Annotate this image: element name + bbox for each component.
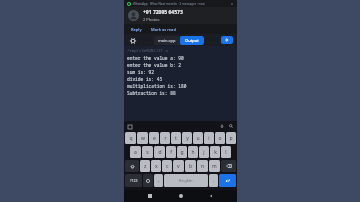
staticText: ,	[158, 177, 160, 184]
staticText: /tmp/cXeRGNCJ1T.o	[127, 48, 168, 53]
button[interactable]: Emoji	[143, 174, 153, 187]
staticText: h	[191, 149, 195, 156]
button[interactable]: g	[177, 146, 187, 158]
staticText: 2 Photos	[143, 17, 160, 22]
staticText: a	[134, 149, 137, 156]
button[interactable]: d	[154, 146, 165, 158]
staticText: q	[129, 135, 133, 142]
other: Expand	[230, 2, 234, 6]
button[interactable]: Clipboard	[127, 124, 132, 129]
staticText: WhatsApp · What Next months · 2 messages…	[133, 2, 205, 6]
button[interactable]: p	[226, 132, 236, 144]
button[interactable]: Output	[180, 36, 204, 45]
button[interactable]: k	[210, 146, 220, 158]
staticText: v	[177, 163, 180, 170]
button[interactable]: h	[188, 146, 198, 158]
staticText: .	[213, 177, 215, 184]
button[interactable]: v	[173, 160, 184, 172]
staticText: s	[146, 149, 149, 156]
staticText: e	[153, 135, 156, 142]
button[interactable]: r	[160, 132, 170, 144]
staticText: u	[196, 135, 200, 142]
staticText: i	[208, 135, 210, 142]
staticText: enter the value a: 90	[127, 55, 184, 61]
button[interactable]: ,	[154, 174, 163, 187]
staticText: +91 72095 64573	[143, 9, 183, 16]
button[interactable]: j	[199, 146, 209, 158]
staticText: n	[201, 163, 205, 170]
staticText: t	[175, 135, 177, 142]
button[interactable]: c	[162, 160, 172, 172]
button[interactable]: Shift	[125, 160, 139, 172]
staticText: p	[229, 135, 233, 142]
button[interactable]: Search	[228, 123, 234, 129]
button[interactable]: q	[125, 132, 136, 144]
staticText: g	[180, 149, 184, 156]
staticText: multiplication is: 180	[127, 83, 187, 89]
button[interactable]: Reply	[129, 26, 144, 33]
button[interactable]: n	[197, 160, 208, 172]
button[interactable]: o	[215, 132, 225, 144]
staticText: d	[158, 149, 162, 156]
staticText: o	[218, 135, 222, 142]
staticText: z	[144, 163, 147, 170]
button[interactable]: s	[142, 146, 153, 158]
button[interactable]: m	[209, 160, 220, 172]
button[interactable]: Enter	[219, 174, 236, 187]
button[interactable]: Home	[176, 191, 186, 201]
button[interactable]: z	[140, 160, 150, 172]
staticText: c	[166, 163, 169, 170]
staticText: w	[141, 135, 145, 142]
staticText: main.cpp	[158, 38, 176, 43]
button[interactable]: i	[204, 132, 214, 144]
staticText: k	[214, 149, 217, 156]
staticText: m	[212, 163, 217, 170]
button[interactable]: u	[193, 132, 203, 144]
button[interactable]: Run	[221, 36, 233, 44]
button[interactable]: e	[149, 132, 159, 144]
staticText: b	[189, 163, 193, 170]
staticText: f	[170, 149, 172, 156]
button[interactable]: Mark as read	[149, 26, 178, 33]
button[interactable]: main.cpp	[154, 36, 180, 45]
button[interactable]: t	[171, 132, 181, 144]
staticText: y	[186, 135, 189, 142]
button[interactable]: b	[185, 160, 196, 172]
button[interactable]: +91 72095 64573	[124, 7, 237, 24]
staticText: j	[203, 149, 205, 156]
button[interactable]: a	[130, 146, 141, 158]
staticText: enter the value b: 2	[127, 62, 181, 68]
staticText: l	[225, 149, 227, 156]
button[interactable]: x	[151, 160, 161, 172]
button[interactable]: Back	[206, 191, 216, 201]
staticText: x	[155, 163, 158, 170]
button[interactable]: Voice input	[219, 123, 225, 129]
button[interactable]: · Hinglish ·	[164, 174, 208, 187]
button[interactable]: l	[221, 146, 231, 158]
button[interactable]: w	[137, 132, 148, 144]
staticText: r	[164, 135, 167, 142]
staticText: ?123	[130, 178, 138, 183]
button[interactable]: Recents	[145, 191, 155, 201]
button[interactable]: Settings	[128, 36, 137, 45]
staticText: Subtraction is: 88	[127, 90, 176, 96]
button[interactable]: .	[209, 174, 218, 187]
button[interactable]: ?123	[125, 174, 142, 187]
button[interactable]: f	[166, 146, 176, 158]
staticText: divide is: 45	[127, 76, 163, 82]
staticText: sum is: 92	[127, 69, 154, 75]
staticText: · Hinglish ·	[177, 178, 195, 183]
button[interactable]: Backspace	[221, 160, 236, 172]
staticText: Output	[185, 38, 199, 43]
button[interactable]: y	[182, 132, 192, 144]
